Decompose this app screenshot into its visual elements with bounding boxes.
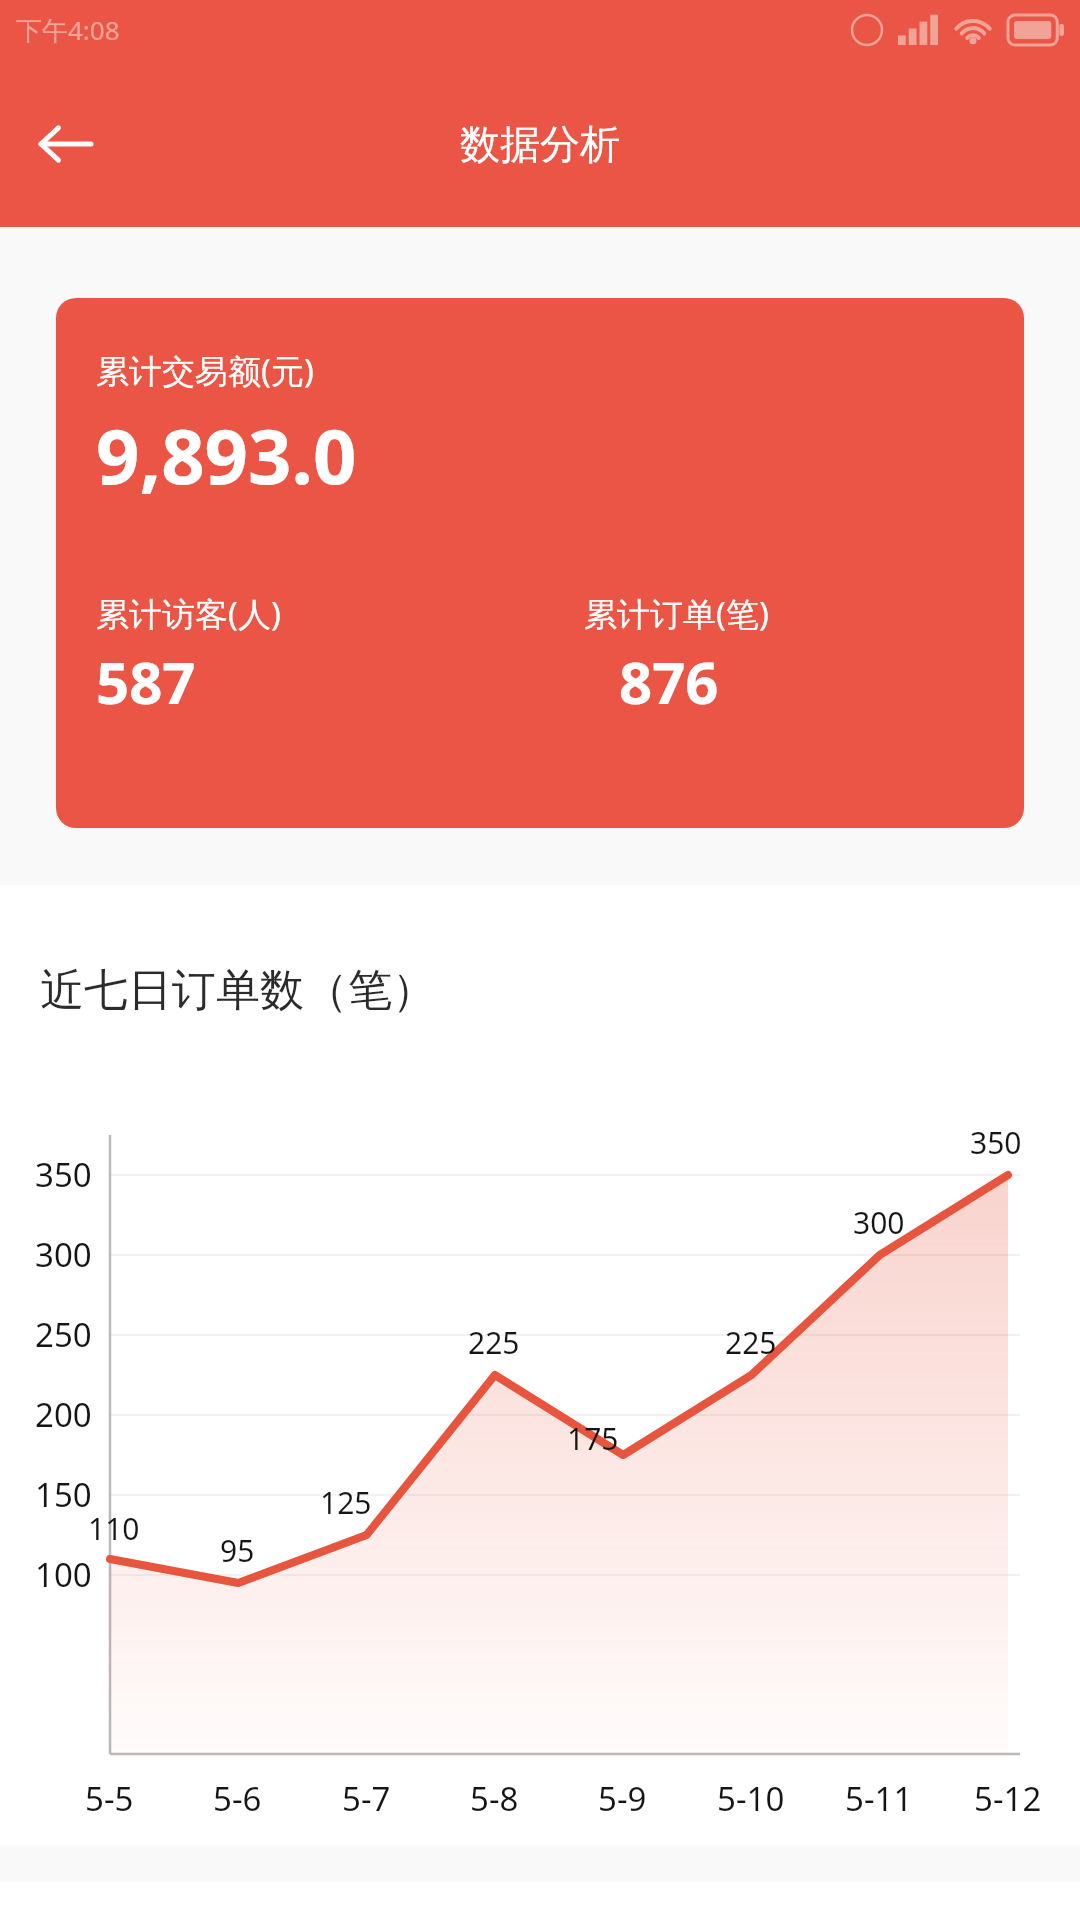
staticText: 100 [35,1552,92,1597]
staticText: 5-12 [974,1776,1042,1821]
staticText: 200 [35,1392,92,1437]
staticText: 125 [320,1482,372,1523]
staticText: 110 [88,1508,140,1549]
staticText: 数据分析 [460,119,620,169]
staticText: 5-5 [85,1776,134,1821]
staticText: 5-6 [213,1776,262,1821]
button[interactable]: Back [22,100,110,188]
button[interactable]: 累计交易额(元) [56,298,1024,828]
staticText: 累计交易额(元) [96,348,314,393]
staticText: 累计访客(人) [96,591,281,636]
staticText: 350 [970,1122,1022,1163]
staticText: 250 [35,1312,92,1357]
staticText: 5-8 [470,1776,519,1821]
staticText: 300 [853,1202,905,1243]
staticText: 150 [35,1472,92,1517]
staticText: 350 [35,1152,92,1197]
staticText: 9,893.0 [96,403,357,507]
staticText: 95 [220,1530,255,1571]
staticText: 近七日订单数（笔） [40,963,436,1018]
staticText: 5-7 [342,1776,391,1821]
staticText: 175 [567,1418,619,1459]
staticText: 225 [468,1322,520,1363]
staticText: 5-10 [717,1776,785,1821]
staticText: 5-9 [598,1776,647,1821]
staticText: 225 [725,1322,777,1363]
staticText: 下午4:08 [16,12,120,48]
staticText: 300 [35,1232,92,1277]
staticText: 587 [96,642,196,721]
staticText: 876 [619,642,719,721]
staticText: 累计订单(笔) [584,591,769,636]
staticText: 5-11 [845,1776,913,1821]
